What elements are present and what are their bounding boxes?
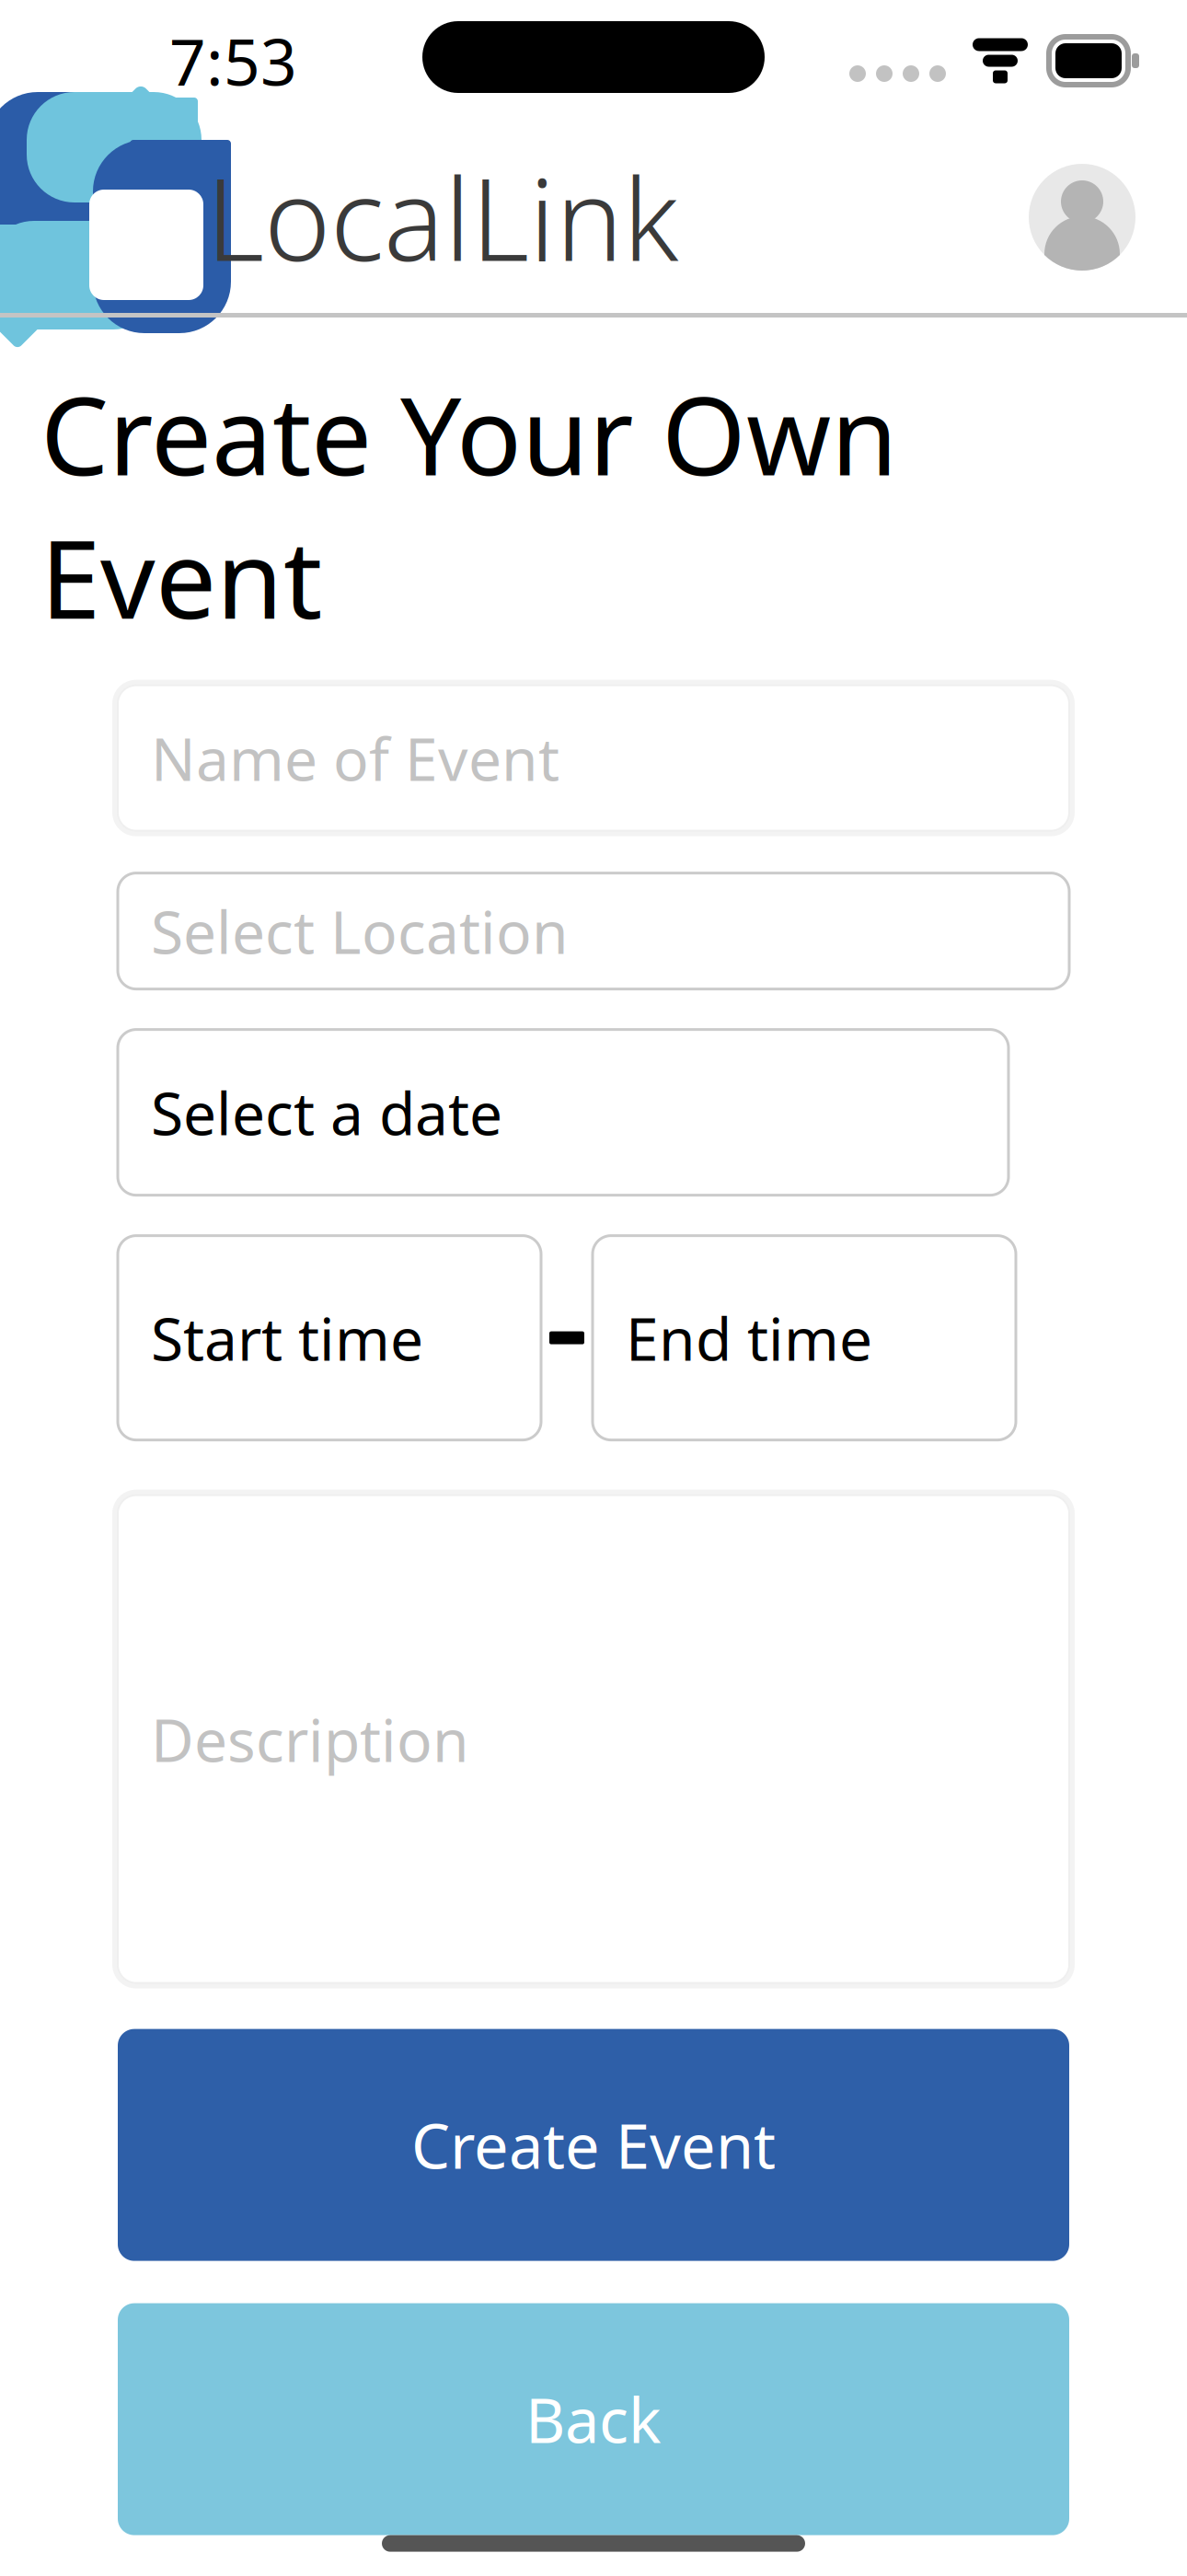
staticText: Name of Event (151, 719, 559, 797)
staticText: LocalLink (206, 142, 679, 292)
button[interactable]: Select a date (118, 1029, 1008, 1195)
button[interactable]: End time (593, 1236, 1016, 1440)
button[interactable]: Create Event (118, 2029, 1069, 2261)
staticText: Description (151, 1700, 469, 1778)
staticText: Start time (151, 1299, 423, 1377)
staticText: Create Your Own Event (40, 362, 898, 648)
button[interactable]: Profile (1029, 164, 1135, 271)
button[interactable]: Description (112, 1490, 1075, 1988)
button[interactable]: LocalLink home (20, 127, 679, 307)
button[interactable]: Back (118, 2303, 1069, 2535)
button[interactable]: Select Location (118, 873, 1069, 989)
staticText: Back (525, 2378, 662, 2460)
staticText: Create Event (411, 2104, 776, 2186)
staticText: Select a date (151, 1073, 502, 1151)
button[interactable]: Name of Event (112, 680, 1075, 836)
button[interactable]: Start time (118, 1236, 541, 1440)
staticText: End time (626, 1299, 872, 1377)
staticText: Select Location (151, 892, 569, 970)
staticText: 7:53 (169, 18, 297, 103)
